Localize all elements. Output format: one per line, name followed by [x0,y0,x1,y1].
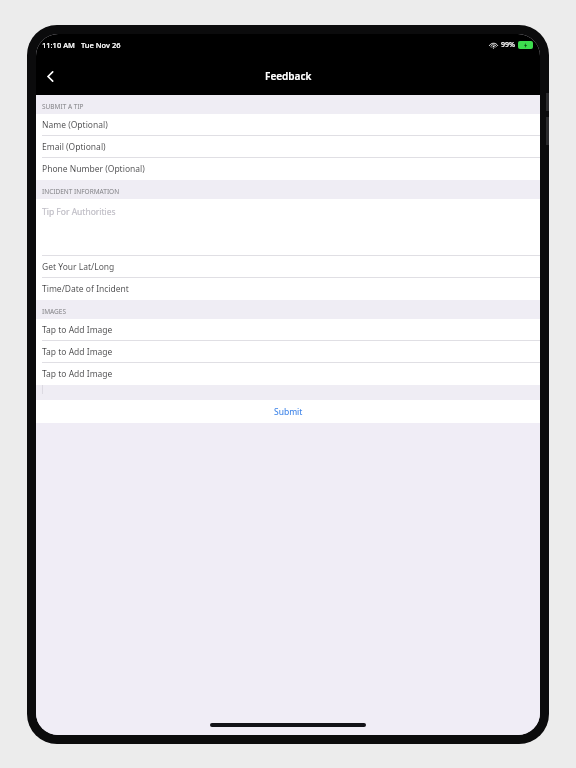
button[interactable]: Name (Optional) [36,114,540,136]
button[interactable]: Tap to Add Image [36,363,540,385]
staticText: Get Your Lat/Long [42,261,115,273]
button[interactable]: Tap to Add Image [36,319,540,341]
staticText: Tap to Add Image [42,346,113,358]
staticText: Tue Nov 26 [81,40,121,50]
staticText: Time/Date of Incident [42,283,129,295]
button[interactable]: Time/Date of Incident [36,278,540,300]
staticText: Tip For Authorities [42,206,116,218]
staticText: INCIDENT INFORMATION [42,187,120,196]
button[interactable]: Back [38,64,62,88]
staticText: 99% [501,40,515,50]
staticText: Name (Optional) [42,119,108,131]
staticText: Phone Number (Optional) [42,163,145,175]
button[interactable]: Submit [36,400,540,423]
staticText: IMAGES [42,307,67,316]
button[interactable]: Email (Optional) [36,136,540,158]
staticText: SUBMIT A TIP [42,102,84,111]
button[interactable]: Phone Number (Optional) [36,158,540,180]
staticText: Submit [274,406,303,418]
staticText: Email (Optional) [42,141,106,153]
staticText: 11:10 AM [42,40,75,50]
button[interactable]: Tip For Authorities [36,199,540,256]
staticText: Tap to Add Image [42,324,113,336]
staticText: Feedback [265,69,312,83]
button[interactable]: Tap to Add Image [36,341,540,363]
button[interactable]: Get Your Lat/Long [36,256,540,278]
staticText: Tap to Add Image [42,368,113,380]
